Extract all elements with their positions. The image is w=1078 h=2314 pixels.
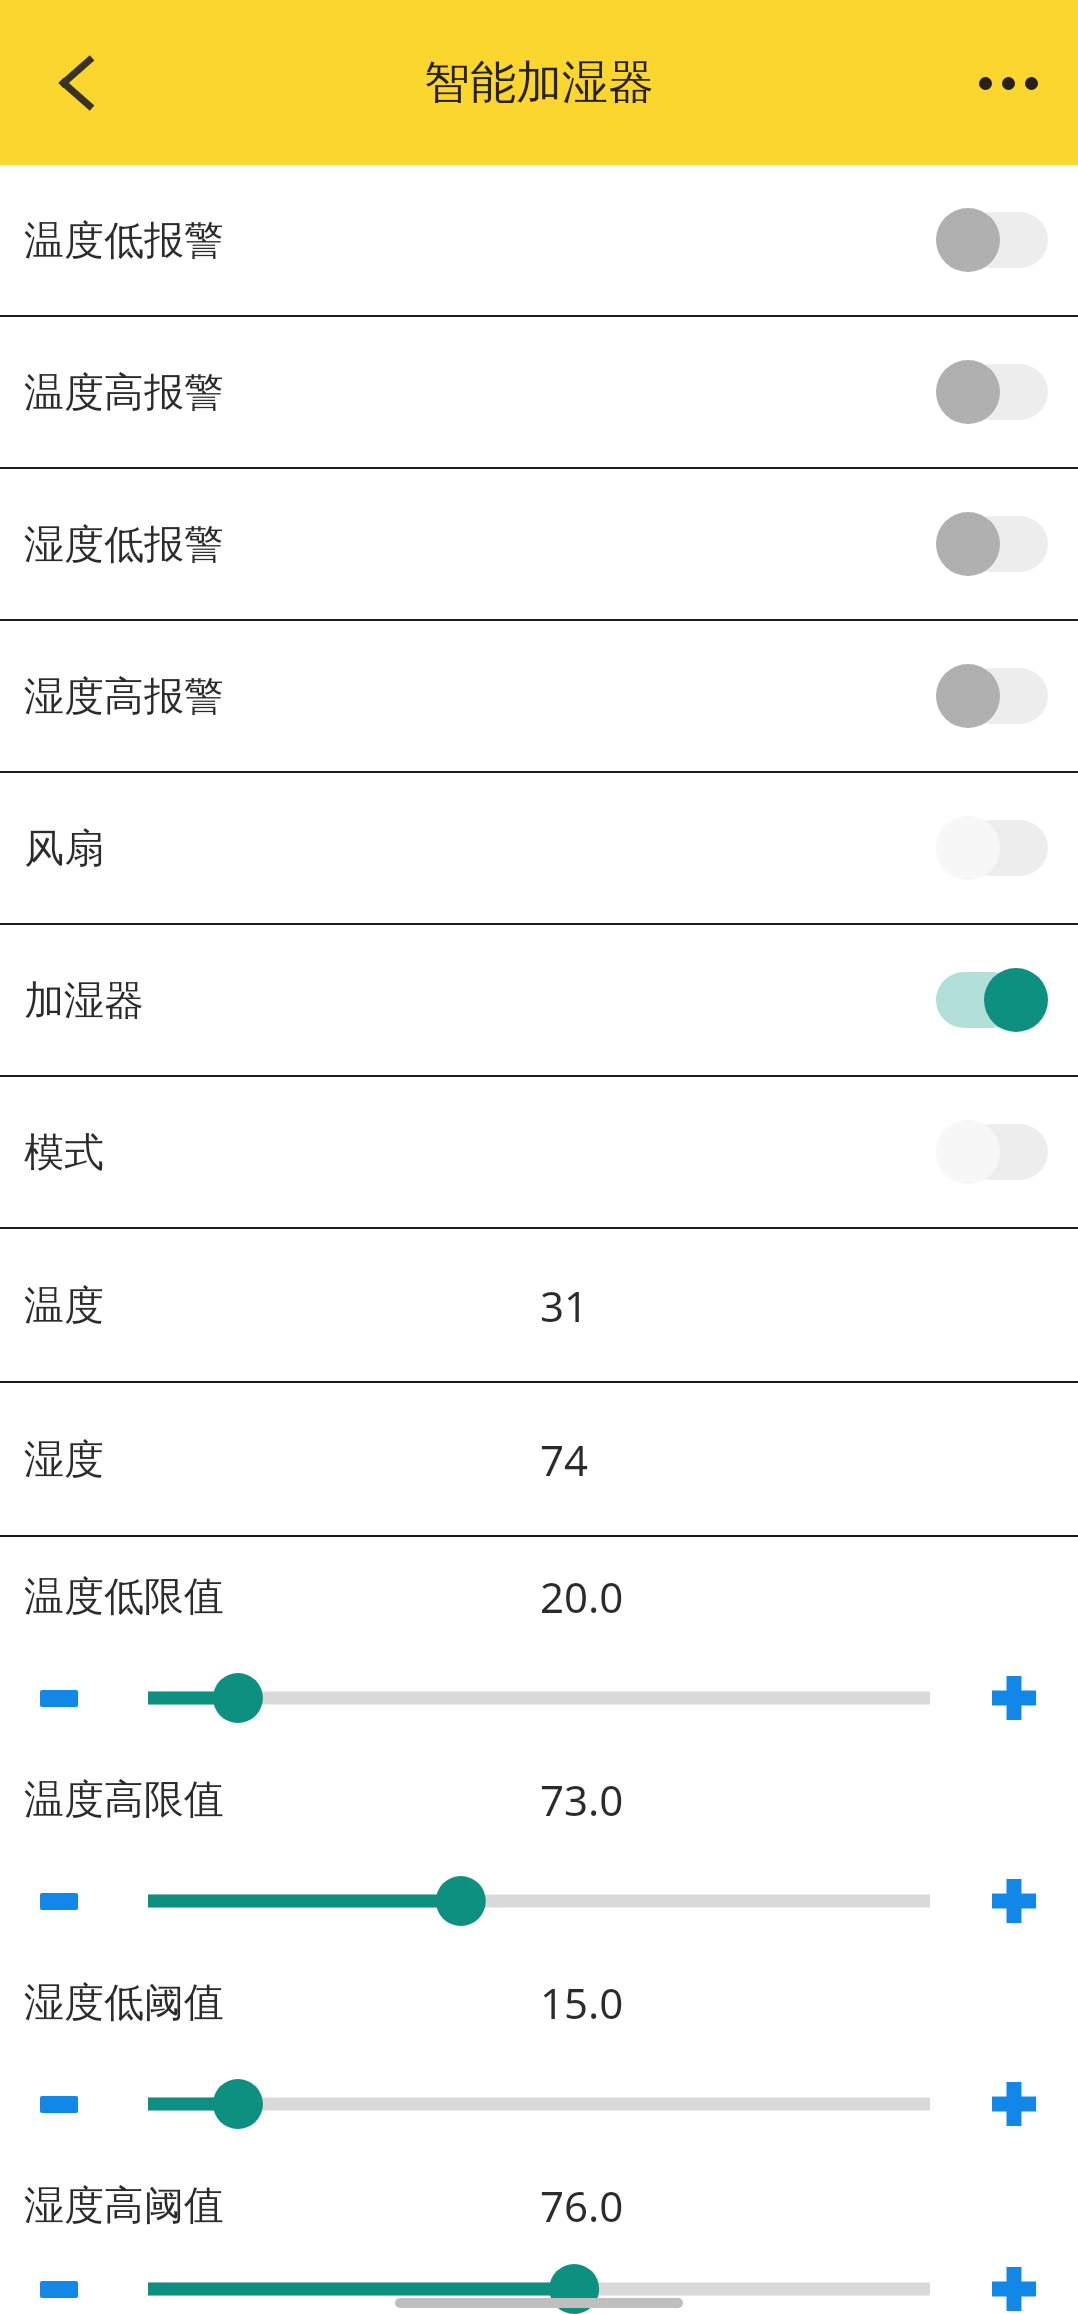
staticText: 15.0 xyxy=(540,1974,624,2031)
staticText: 20.0 xyxy=(540,1568,624,1625)
staticText: 湿度低阈值 xyxy=(24,1977,224,2027)
button[interactable]: Increase xyxy=(972,2264,1056,2314)
staticText: 温度低报警 xyxy=(24,215,224,265)
staticText: 温度低限值 xyxy=(24,1571,224,1621)
button[interactable] xyxy=(148,1668,930,1728)
button[interactable] xyxy=(148,1871,930,1931)
button[interactable]: Increase xyxy=(972,1656,1056,1740)
button[interactable]: 湿度 xyxy=(0,1383,1078,1535)
staticText: 76.0 xyxy=(540,2177,624,2234)
button[interactable]: 加湿器 xyxy=(0,925,1078,1075)
staticText: 湿度高报警 xyxy=(24,671,224,721)
staticText: 湿度高阈值 xyxy=(24,2180,224,2230)
staticText: 风扇 xyxy=(24,823,104,873)
button[interactable]: 湿度低报警 xyxy=(0,469,1078,619)
staticText: 智能加湿器 xyxy=(424,54,654,112)
button[interactable] xyxy=(148,2074,930,2134)
button[interactable]: Back xyxy=(30,35,126,131)
button[interactable]: 模式 xyxy=(0,1077,1078,1227)
staticText: 湿度低报警 xyxy=(24,519,224,569)
button[interactable] xyxy=(148,2264,930,2314)
button[interactable]: Decrease xyxy=(20,1659,98,1737)
button[interactable]: Decrease xyxy=(20,1862,98,1940)
button[interactable]: Decrease xyxy=(20,2264,98,2314)
button[interactable]: 湿度高报警 xyxy=(0,621,1078,771)
staticText: 加湿器 xyxy=(24,975,144,1025)
button[interactable]: 风扇 xyxy=(0,773,1078,923)
staticText: 湿度 xyxy=(24,1434,104,1484)
staticText: 温度高限值 xyxy=(24,1774,224,1824)
button[interactable]: 温度 xyxy=(0,1229,1078,1381)
button[interactable]: More options xyxy=(960,35,1056,131)
staticText: 温度高报警 xyxy=(24,367,224,417)
staticText: 74 xyxy=(540,1431,589,1488)
staticText: 73.0 xyxy=(540,1771,624,1828)
button[interactable]: Decrease xyxy=(20,2065,98,2143)
staticText: 温度 xyxy=(24,1280,104,1330)
staticText: 31 xyxy=(540,1277,589,1334)
button[interactable]: Increase xyxy=(972,2062,1056,2146)
button[interactable]: 温度低报警 xyxy=(0,165,1078,315)
button[interactable]: 温度高报警 xyxy=(0,317,1078,467)
staticText: 模式 xyxy=(24,1127,104,1177)
button[interactable]: Increase xyxy=(972,1859,1056,1943)
